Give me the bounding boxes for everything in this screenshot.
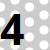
staticText: 4 (0, 0, 24, 50)
